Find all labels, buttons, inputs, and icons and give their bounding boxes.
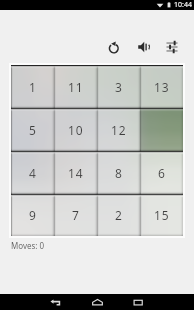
button[interactable]: 5 xyxy=(11,108,54,151)
button[interactable]: 12 xyxy=(97,108,140,151)
staticText: 1 xyxy=(29,79,37,95)
staticText: 4 xyxy=(29,165,37,181)
button[interactable]: 9 xyxy=(11,194,54,236)
button[interactable]: 14 xyxy=(54,151,97,194)
staticText: 12 xyxy=(111,122,127,138)
staticText: 7 xyxy=(72,207,80,223)
button[interactable]: 7 xyxy=(54,194,97,236)
button[interactable]: Home xyxy=(89,294,105,310)
staticText: 5 xyxy=(29,122,37,138)
staticText: 15 xyxy=(154,207,170,223)
staticText: Moves: 0 xyxy=(11,240,45,251)
button[interactable]: Restart xyxy=(101,34,127,60)
staticText: 13 xyxy=(154,79,170,95)
staticText: 9 xyxy=(29,207,37,223)
button[interactable]: 15 xyxy=(140,194,183,236)
button[interactable]: 8 xyxy=(97,151,140,194)
staticText: 14 xyxy=(68,165,84,181)
button[interactable]: 11 xyxy=(54,65,97,108)
button[interactable]: 10 xyxy=(54,108,97,151)
button[interactable]: 1 xyxy=(11,65,54,108)
staticText: 3 xyxy=(115,79,123,95)
button[interactable]: 4 xyxy=(11,151,54,194)
button[interactable]: Back xyxy=(47,294,63,310)
staticText: 8 xyxy=(115,165,123,181)
button[interactable]: 13 xyxy=(140,65,183,108)
staticText: 6 xyxy=(158,165,166,181)
button[interactable]: 2 xyxy=(97,194,140,236)
staticText: 10:44 xyxy=(174,0,192,10)
button[interactable]: Sound xyxy=(131,34,157,60)
staticText: 2 xyxy=(115,207,123,223)
button[interactable]: 3 xyxy=(97,65,140,108)
button[interactable] xyxy=(140,108,183,151)
button[interactable]: Settings xyxy=(159,34,185,60)
button[interactable]: 6 xyxy=(140,151,183,194)
staticText: 11 xyxy=(68,79,84,95)
staticText: 10 xyxy=(68,122,84,138)
button[interactable]: Recents xyxy=(130,294,146,310)
